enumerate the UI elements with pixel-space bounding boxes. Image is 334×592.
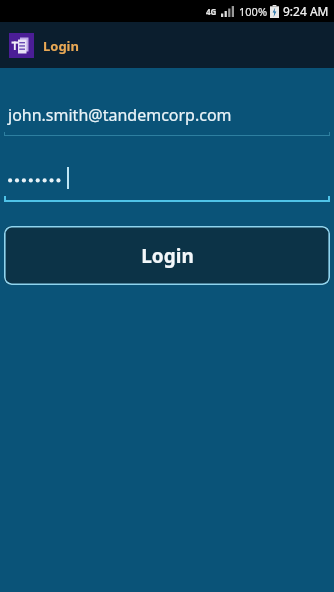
staticText: Login <box>141 243 194 269</box>
staticText: Login <box>43 37 79 55</box>
staticText: 9:24 AM <box>283 3 329 19</box>
staticText: 4G <box>206 6 217 17</box>
staticText: 100% <box>239 4 268 19</box>
button[interactable]: Login <box>4 226 330 285</box>
button[interactable]: Password <box>0 162 334 196</box>
button[interactable]: john.smith@tandemcorp.com <box>0 98 334 132</box>
staticText: john.smith@tandemcorp.com <box>8 104 232 126</box>
button[interactable]: App icon <box>9 33 79 58</box>
